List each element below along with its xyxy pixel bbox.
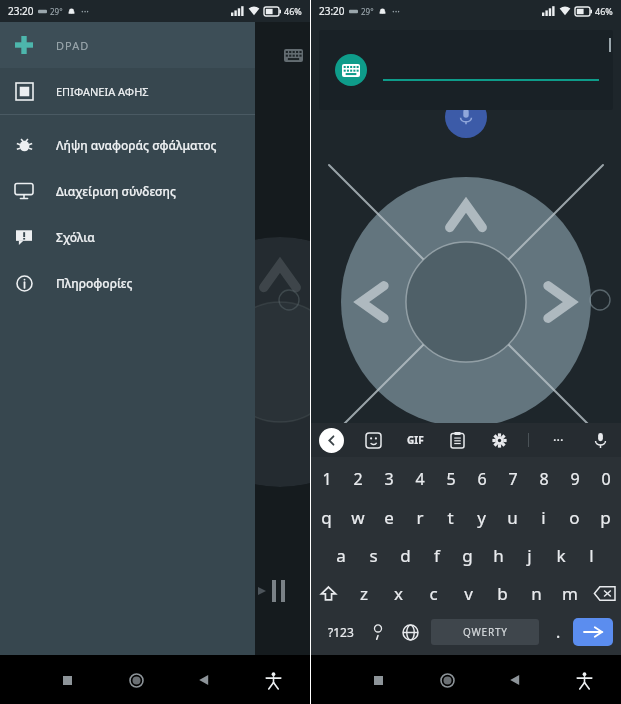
- staticText: 5: [446, 468, 456, 490]
- button[interactable]: 3: [373, 460, 404, 498]
- button[interactable]: Enter: [573, 618, 613, 646]
- staticText: d: [400, 544, 411, 567]
- button[interactable]: q: [311, 498, 342, 536]
- staticText: GIF: [407, 433, 424, 447]
- button[interactable]: 9: [559, 460, 590, 498]
- button[interactable]: ?123: [319, 612, 363, 652]
- button[interactable]: g: [452, 536, 483, 574]
- staticText: p: [600, 506, 611, 529]
- staticText: 23:20: [319, 4, 345, 18]
- staticText: 9: [570, 468, 580, 490]
- staticText: 6: [477, 468, 487, 490]
- staticText: e: [384, 506, 394, 529]
- button[interactable]: Keyboard: [278, 40, 308, 70]
- staticText: ···: [553, 431, 564, 449]
- button[interactable]: 2: [342, 460, 373, 498]
- button[interactable]: o: [559, 498, 590, 536]
- staticText: 3: [384, 468, 394, 490]
- button[interactable]: k: [545, 536, 576, 574]
- staticText: QWERTY: [463, 625, 508, 639]
- button[interactable]: w: [342, 498, 373, 536]
- button[interactable]: n: [519, 574, 553, 612]
- button[interactable]: e: [373, 498, 404, 536]
- staticText: ΕΠΙΦΑΝΕΙΑ ΑΦΗΣ: [56, 84, 149, 99]
- button[interactable]: More options: [545, 427, 571, 453]
- button[interactable]: Settings: [486, 427, 512, 453]
- staticText: 7: [508, 468, 518, 490]
- button[interactable]: Back: [187, 663, 221, 697]
- button[interactable]: Stickers: [360, 427, 386, 453]
- button[interactable]: y: [466, 498, 497, 536]
- button[interactable]: 6: [466, 460, 497, 498]
- button[interactable]: a: [325, 536, 357, 574]
- button[interactable]: .: [543, 612, 573, 652]
- button[interactable]: Voice typing: [587, 427, 613, 453]
- staticText: DPAD: [56, 38, 90, 53]
- button[interactable]: Clipboard: [444, 427, 470, 453]
- button[interactable]: QWERTY: [431, 619, 539, 645]
- staticText: ···: [81, 4, 90, 18]
- button[interactable]: f: [421, 536, 452, 574]
- button[interactable]: x: [381, 574, 416, 612]
- staticText: 23:20: [8, 4, 34, 18]
- button[interactable]: Voice input: [445, 96, 487, 138]
- button[interactable]: Shift: [311, 574, 346, 612]
- button[interactable]: Σχόλια: [0, 214, 255, 260]
- button[interactable]: z: [346, 574, 381, 612]
- staticText: t: [447, 506, 454, 529]
- staticText: 2: [353, 468, 363, 490]
- button[interactable]: Keyboard input: [335, 54, 367, 86]
- button[interactable]: 7: [497, 460, 528, 498]
- button[interactable]: Accessibility: [567, 663, 601, 697]
- staticText: 0: [601, 468, 611, 490]
- button[interactable]: ΕΠΙΦΑΝΕΙΑ ΑΦΗΣ: [0, 68, 255, 114]
- button[interactable]: 0: [590, 460, 621, 498]
- button[interactable]: Accessibility: [256, 663, 290, 697]
- staticText: x: [394, 582, 403, 605]
- button[interactable]: d: [389, 536, 421, 574]
- button[interactable]: Home: [430, 663, 464, 697]
- button[interactable]: Recents: [50, 663, 84, 697]
- button[interactable]: c: [416, 574, 451, 612]
- button[interactable]: i: [528, 498, 559, 536]
- staticText: Σχόλια: [56, 229, 95, 245]
- button[interactable]: Back: [498, 663, 532, 697]
- button[interactable]: m: [553, 574, 587, 612]
- staticText: o: [569, 506, 580, 529]
- button[interactable]: r: [404, 498, 435, 536]
- button[interactable]: Back: [319, 428, 344, 453]
- staticText: y: [477, 506, 486, 529]
- button[interactable]: Emoji comma: [363, 612, 393, 652]
- button[interactable]: h: [483, 536, 514, 574]
- button[interactable]: u: [497, 498, 528, 536]
- staticText: 29°: [50, 6, 63, 17]
- button[interactable]: Πληροφορίες: [0, 260, 255, 306]
- staticText: m: [562, 582, 578, 605]
- button[interactable]: 8: [528, 460, 559, 498]
- staticText: s: [369, 544, 378, 567]
- button[interactable]: l: [576, 536, 607, 574]
- button[interactable]: Λήψη αναφοράς σφάλματος: [0, 122, 255, 168]
- button[interactable]: 1: [311, 460, 342, 498]
- button[interactable]: 5: [435, 460, 466, 498]
- button[interactable]: j: [514, 536, 545, 574]
- button[interactable]: [383, 30, 599, 110]
- staticText: a: [336, 544, 346, 567]
- button[interactable]: s: [357, 536, 389, 574]
- staticText: l: [589, 544, 594, 567]
- button[interactable]: Home: [119, 663, 153, 697]
- button[interactable]: DPAD: [0, 22, 255, 68]
- button[interactable]: Διαχείριση σύνδεσης: [0, 168, 255, 214]
- button[interactable]: 4: [404, 460, 435, 498]
- staticText: q: [321, 506, 332, 529]
- button[interactable]: Recents: [361, 663, 395, 697]
- button[interactable]: Backspace: [587, 574, 621, 612]
- staticText: ?123: [328, 624, 354, 640]
- button[interactable]: b: [485, 574, 519, 612]
- button[interactable]: Change language: [393, 612, 427, 652]
- button[interactable]: t: [435, 498, 466, 536]
- button[interactable]: v: [451, 574, 485, 612]
- button[interactable]: GIF: [402, 427, 428, 453]
- button[interactable]: p: [590, 498, 621, 536]
- staticText: h: [493, 544, 504, 567]
